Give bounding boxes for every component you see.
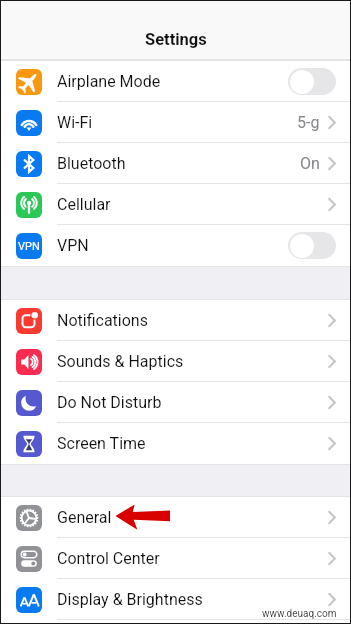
button[interactable]: Sounds & Haptics [0,341,351,382]
staticText: Screen Time [57,434,146,453]
staticText: Sounds & Haptics [57,352,184,371]
staticText: Notifications [57,311,148,330]
button[interactable]: Display & Brightness [0,579,351,620]
button[interactable]: General [0,497,351,538]
staticText: Airplane Mode [57,72,161,91]
staticText: Bluetooth [57,154,126,173]
button[interactable]: Wi-Fi [0,102,351,143]
button[interactable]: Control Center [0,538,351,579]
staticText: VPN [18,240,40,253]
staticText: Display & Brightness [57,590,203,609]
button[interactable]: Airplane Mode [0,61,351,102]
staticText: www.deuaq.com [262,608,337,620]
button[interactable]: Notifications [0,300,351,341]
staticText: General [57,508,112,527]
staticText: Control Center [57,549,160,568]
staticText: On [300,154,320,173]
button[interactable]: Bluetooth [0,143,351,184]
button[interactable]: Toggle [288,232,336,259]
button[interactable]: Toggle [288,68,336,95]
staticText: Settings [145,30,207,49]
staticText: Cellular [57,195,111,214]
button[interactable]: VPN [0,225,351,266]
staticText: 5-g [297,113,320,132]
button[interactable]: Cellular [0,184,351,225]
button[interactable]: Screen Time [0,423,351,464]
staticText: VPN [57,236,89,255]
staticText: Do Not Disturb [57,393,162,412]
staticText: Wi-Fi [57,113,93,132]
button[interactable]: Do Not Disturb [0,382,351,423]
